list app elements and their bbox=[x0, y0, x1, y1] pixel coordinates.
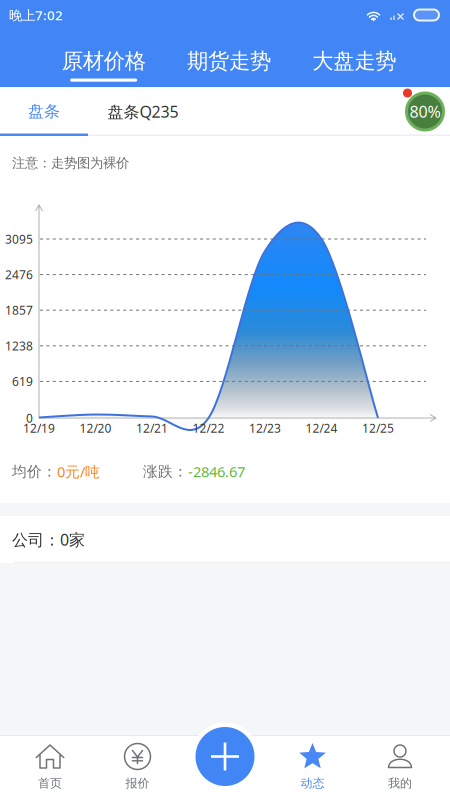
staticText: 首页 bbox=[38, 776, 62, 791]
staticText: 12/24 bbox=[305, 420, 337, 436]
staticText: 12/21 bbox=[136, 420, 168, 436]
staticText: 12/20 bbox=[79, 420, 111, 436]
staticText: 0元/吨 bbox=[57, 462, 100, 481]
staticText: 3095 bbox=[5, 231, 33, 247]
staticText: 盘条 bbox=[28, 102, 60, 121]
staticText: 80% bbox=[409, 101, 440, 122]
staticText: 2476 bbox=[5, 267, 33, 282]
staticText: 0 bbox=[26, 410, 33, 426]
button[interactable]: 我的 bbox=[356, 735, 444, 800]
button[interactable]: Completion 80 percent bbox=[402, 88, 448, 134]
button[interactable]: 首页 bbox=[6, 735, 94, 800]
button[interactable]: 原材价格 bbox=[41, 30, 166, 87]
staticText: 期货走势 bbox=[187, 48, 271, 74]
button[interactable]: 大盘走势 bbox=[292, 30, 417, 87]
staticText: 619 bbox=[12, 373, 33, 389]
staticText: 涨跌： bbox=[143, 462, 188, 480]
staticText: 动态 bbox=[300, 776, 324, 791]
staticText: 均价： bbox=[12, 462, 57, 480]
staticText: -2846.67 bbox=[188, 462, 245, 481]
staticText: 12/19 bbox=[23, 420, 55, 436]
button[interactable]: 报价 bbox=[94, 735, 181, 800]
staticText: 12/22 bbox=[192, 420, 224, 436]
staticText: 1857 bbox=[5, 302, 33, 318]
staticText: 晚上7:02 bbox=[9, 6, 63, 24]
staticText: 1238 bbox=[5, 338, 33, 354]
staticText: 大盘走势 bbox=[312, 48, 396, 74]
button[interactable]: 动态 bbox=[269, 735, 356, 800]
staticText: 12/23 bbox=[249, 420, 281, 436]
staticText: 12/25 bbox=[362, 420, 394, 436]
staticText: 原材价格 bbox=[62, 48, 146, 74]
button[interactable]: 盘条 bbox=[0, 88, 88, 135]
staticText: 公司：0家 bbox=[12, 529, 85, 550]
button[interactable]: 期货走势 bbox=[166, 30, 292, 87]
staticText: 注意：走势图为裸价 bbox=[12, 155, 129, 171]
button[interactable]: Add bbox=[191, 722, 259, 790]
staticText: 盘条Q235 bbox=[107, 101, 178, 122]
button[interactable]: 盘条Q235 bbox=[88, 88, 198, 135]
staticText: 我的 bbox=[388, 776, 412, 791]
staticText: 报价 bbox=[125, 776, 149, 791]
